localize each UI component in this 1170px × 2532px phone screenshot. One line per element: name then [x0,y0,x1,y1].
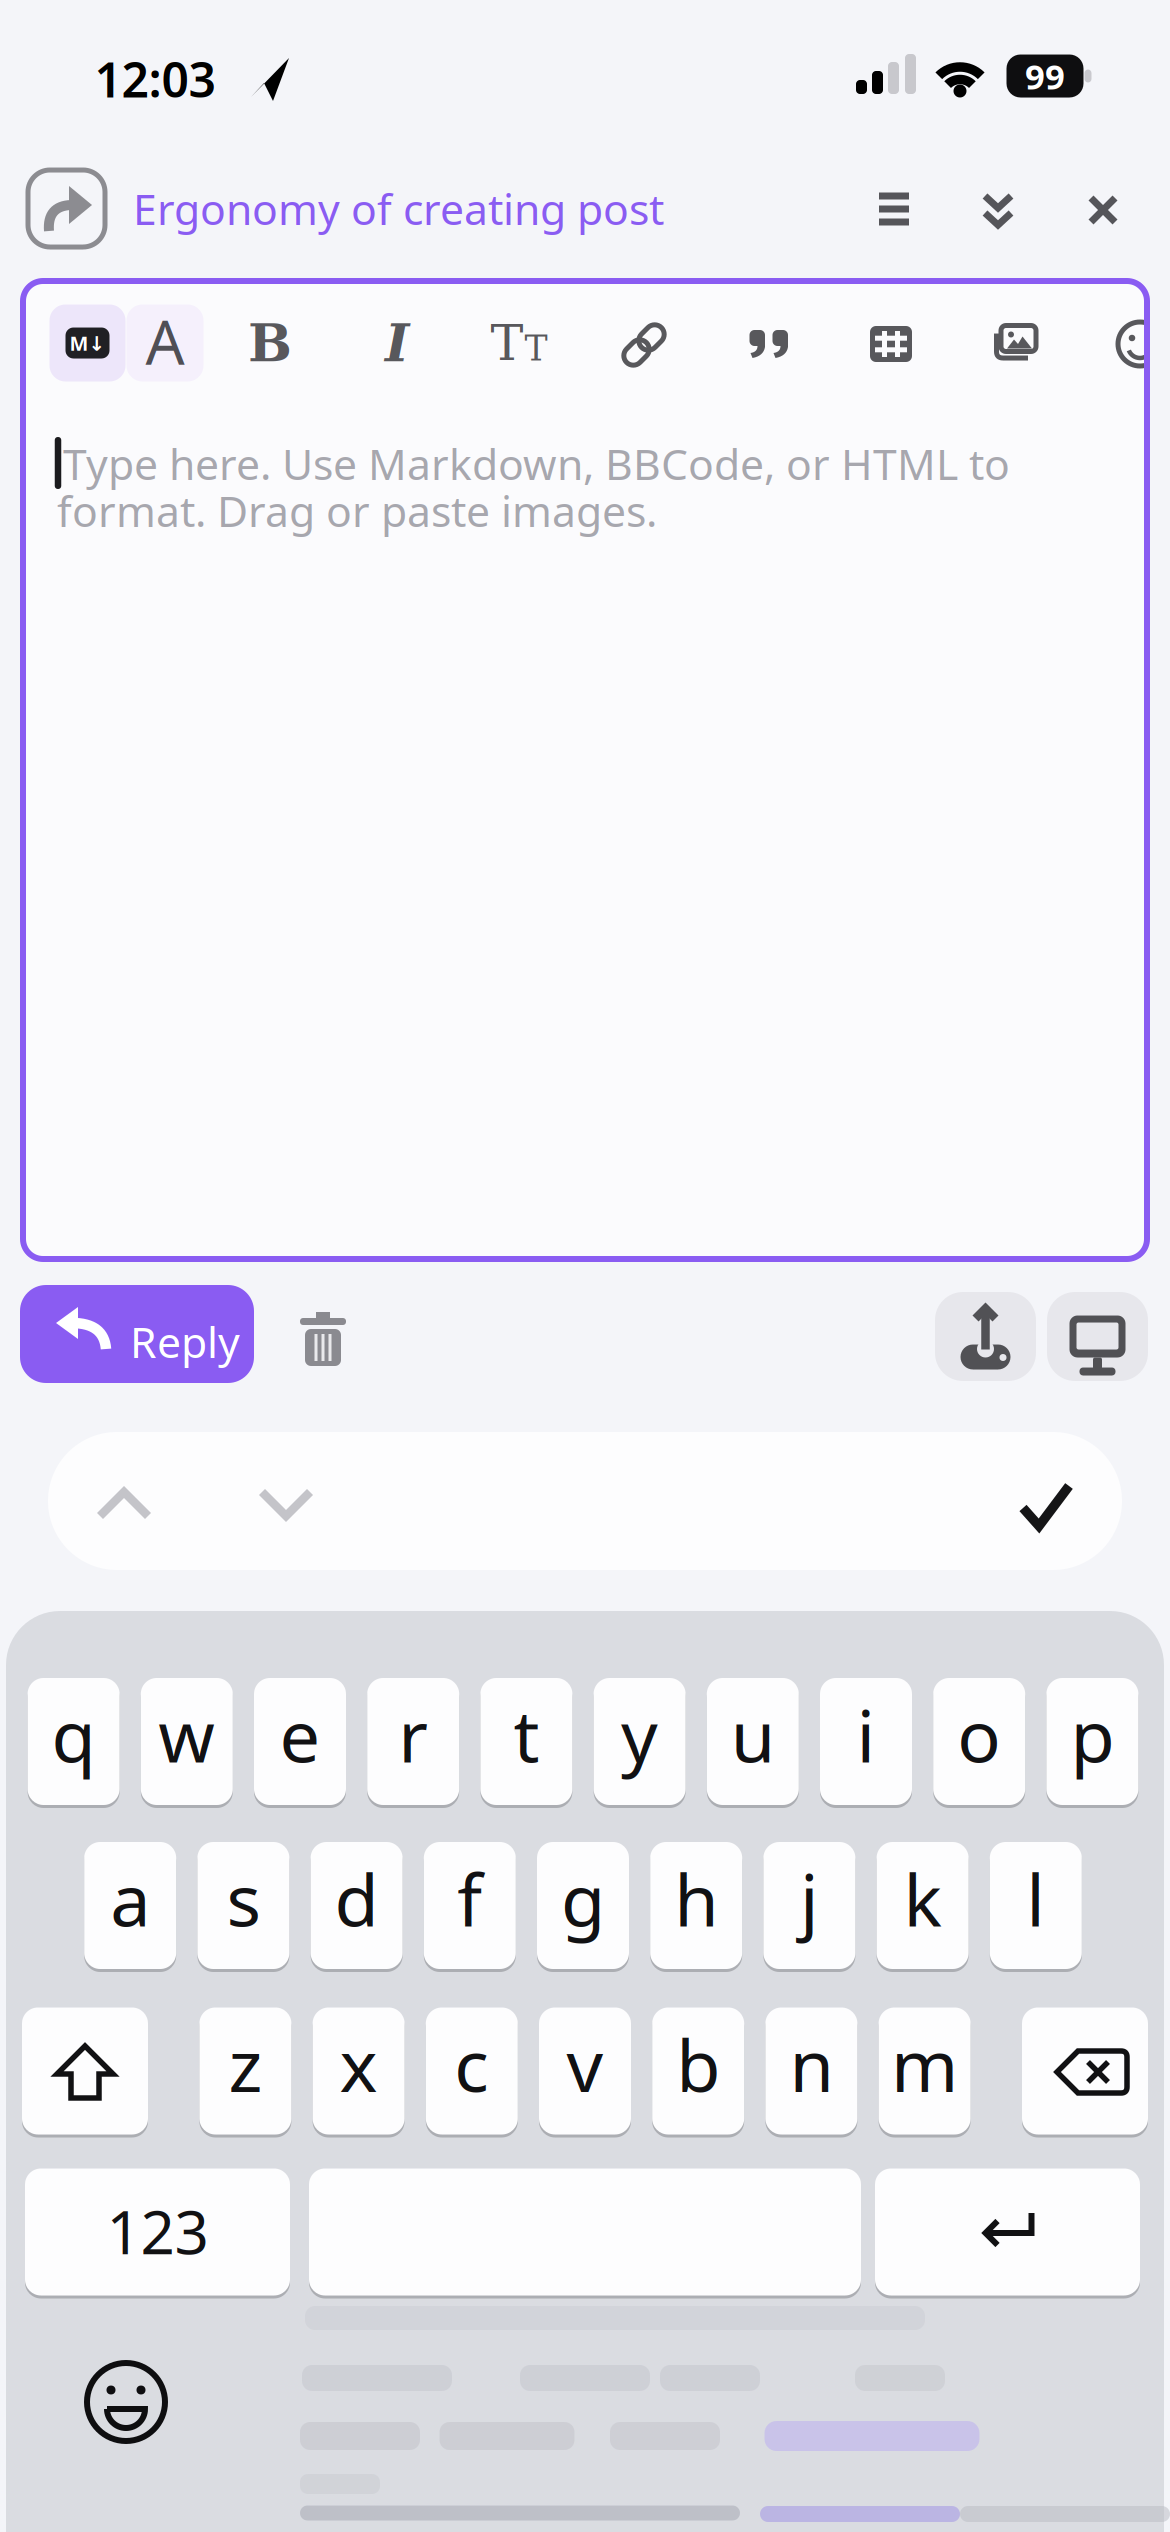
button[interactable]: j [763,1841,855,1971]
button[interactable]: i [820,1677,912,1807]
staticText: f [457,1851,482,1946]
button[interactable]: Collapse [982,193,1014,229]
button[interactable]: k [877,1841,969,1971]
staticText: b [676,2016,720,2112]
button[interactable]: q [28,1677,120,1807]
button[interactable]: w [141,1677,233,1807]
button[interactable]: d [311,1841,403,1971]
staticText: Reply [130,1313,240,1370]
staticText: 123 [106,2191,208,2271]
staticText: c [454,2016,489,2112]
button[interactable]: p [1046,1677,1138,1807]
staticText: e [279,1687,320,1782]
button[interactable]: Markdown mode [49,304,125,381]
button[interactable]: Share draft [28,170,105,247]
staticText: v [566,2016,603,2112]
button[interactable]: Delete [1022,2007,1148,2137]
staticText: a [110,1851,150,1946]
button[interactable]: Shift [22,2007,148,2137]
staticText: 99 [1025,53,1065,99]
staticText: A [145,300,184,382]
staticText: format. Drag or paste images. [57,482,657,539]
staticText: u [731,1687,775,1782]
button[interactable]: Upload image [994,325,1038,360]
button[interactable]: z [199,2007,291,2137]
staticText: i [856,1687,875,1782]
button[interactable]: b [652,2007,744,2137]
button[interactable]: a [84,1841,176,1971]
staticText: Type here. Use Markdown, BBCode, or HTML… [63,435,1010,492]
button[interactable]: Upload [935,1292,1036,1381]
staticText: z [228,2016,262,2112]
staticText: M↓ [69,330,105,356]
button[interactable]: Numbers [25,2168,290,2298]
staticText: B [248,312,292,374]
staticText: Ergonomy of creating post [133,180,664,237]
button[interactable]: Return [875,2168,1140,2298]
staticText: r [398,1687,428,1782]
button[interactable]: f [424,1841,516,1971]
staticText: w [158,1687,215,1782]
button[interactable]: g [537,1841,629,1971]
button[interactable]: Insert emoji [1115,319,1165,369]
button[interactable]: Done [1019,1482,1073,1530]
button[interactable]: Emoji [84,2360,168,2444]
button[interactable]: y [594,1677,686,1807]
staticText: I [385,312,409,374]
button[interactable]: r [367,1677,459,1807]
button[interactable]: u [707,1677,799,1807]
button[interactable]: o [933,1677,1025,1807]
staticText: l [1026,1851,1045,1946]
button[interactable]: v [539,2007,631,2137]
button[interactable]: Menu [875,192,913,226]
staticText: h [674,1851,718,1946]
button[interactable]: Italic [372,308,422,378]
button[interactable]: m [879,2007,971,2137]
button[interactable]: Toggle preview [1047,1292,1148,1381]
button[interactable]: x [313,2007,405,2137]
button[interactable]: h [650,1841,742,1971]
button[interactable]: e [254,1677,346,1807]
button[interactable]: Discard draft [300,1310,346,1366]
button[interactable]: t [480,1677,572,1807]
button[interactable]: Previous field [95,1487,153,1521]
staticText: j [800,1851,819,1946]
staticText: 12:03 [94,47,215,111]
staticText: o [957,1687,1001,1782]
button[interactable]: Next field [257,1487,315,1521]
staticText: d [335,1851,379,1946]
button[interactable]: Close [1088,195,1118,225]
button[interactable]: Insert link [618,319,670,371]
button[interactable]: Reply [20,1285,254,1383]
button[interactable]: Blockquote [747,329,791,359]
button[interactable]: l [990,1841,1082,1971]
button[interactable]: Text size [484,308,554,378]
button[interactable]: Bold [240,308,300,378]
staticText: k [904,1851,942,1946]
staticText: g [561,1851,605,1946]
button[interactable]: s [197,1841,289,1971]
staticText: s [226,1851,260,1946]
staticText: T [490,314,523,372]
staticText: t [513,1687,539,1782]
staticText: y [621,1687,658,1782]
staticText: q [52,1687,96,1782]
button[interactable]: Rich text mode [126,304,203,381]
staticText: T [524,328,547,369]
staticText: m [891,2016,958,2112]
button[interactable]: Space [309,2168,861,2298]
staticText: n [789,2016,833,2112]
button[interactable]: c [426,2007,518,2137]
button[interactable]: Insert table [870,326,912,362]
button[interactable]: n [765,2007,857,2137]
staticText: p [1070,1687,1114,1782]
staticText: x [340,2016,378,2112]
